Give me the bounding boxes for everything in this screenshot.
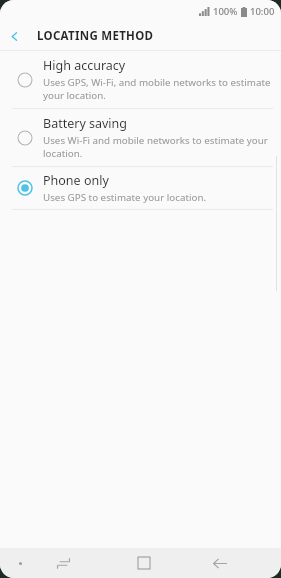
staticText: 100% <box>213 5 238 18</box>
button[interactable]: High accuracy <box>0 51 281 108</box>
button[interactable]: Home <box>131 550 157 576</box>
staticText: Uses GPS, Wi-Fi, and mobile networks to … <box>43 76 271 102</box>
button[interactable]: Battery saving <box>0 109 281 166</box>
button[interactable]: Recent apps <box>50 550 76 576</box>
staticText: Uses GPS to estimate your location. <box>43 191 207 204</box>
staticText: Phone only <box>43 172 109 189</box>
staticText: Battery saving <box>43 115 127 132</box>
button[interactable]: Hide keyboard <box>12 555 28 571</box>
button[interactable]: Back <box>0 22 28 50</box>
staticText: 10:00 <box>250 5 275 18</box>
staticText: Uses Wi-Fi and mobile networks to estima… <box>43 134 268 160</box>
staticText: LOCATING METHOD <box>37 28 154 44</box>
button[interactable]: Back <box>207 550 233 576</box>
button[interactable]: Phone only <box>0 167 281 209</box>
staticText: High accuracy <box>43 57 126 74</box>
